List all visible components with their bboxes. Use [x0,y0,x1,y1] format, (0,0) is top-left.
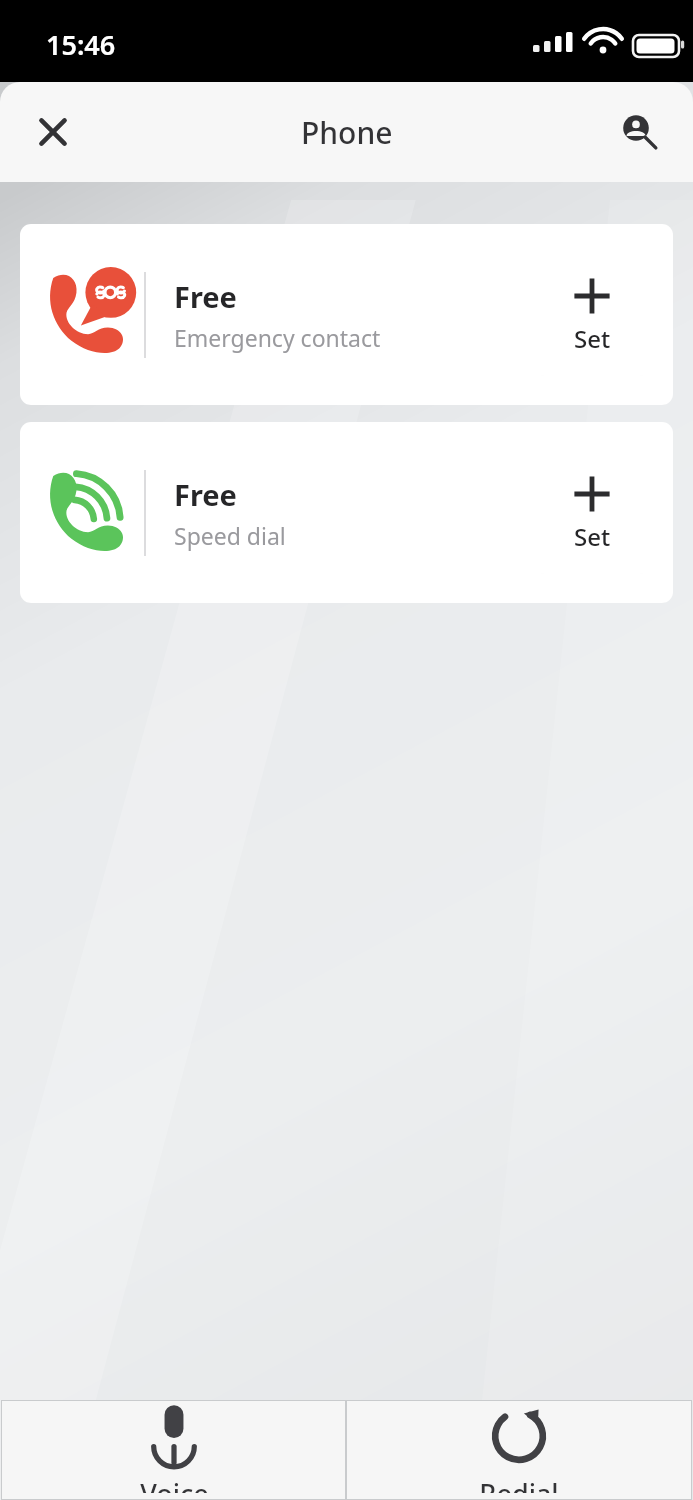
button[interactable]: Free [20,224,673,405]
staticText: Redial [479,1475,559,1493]
staticText: Set [574,520,611,553]
staticText: 15:46 [46,26,116,63]
staticText: Set [574,322,611,355]
button[interactable]: Redial [347,1401,691,1499]
button[interactable]: Set [531,452,653,574]
button[interactable]: Search contacts [609,101,671,163]
button[interactable]: Close [22,101,84,163]
button[interactable]: Free [20,422,673,603]
button[interactable]: Set [531,254,653,376]
staticText: Emergency contact [174,322,381,353]
staticText: Voice [140,1475,209,1493]
staticText: Free [174,277,237,316]
staticText: Free [174,475,237,514]
staticText: Speed dial [174,520,286,551]
button[interactable]: Voice dial [2,1401,345,1499]
staticText: Phone [301,112,393,153]
